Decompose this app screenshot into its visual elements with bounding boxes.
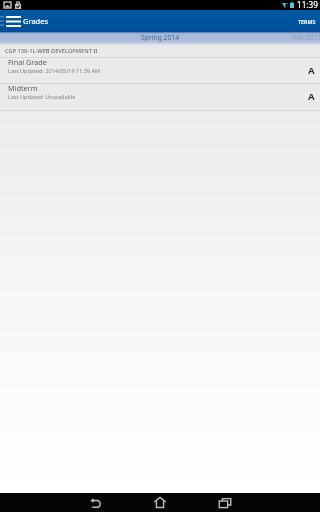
staticText: A [308, 64, 315, 77]
button[interactable]: Spring 2014 [87, 32, 234, 45]
button[interactable]: Home [136, 493, 184, 512]
button[interactable]: Recent apps [201, 493, 249, 512]
staticText: Spring 2014 [141, 33, 180, 42]
staticText: Fall 2013 [293, 33, 320, 42]
button[interactable]: Final Grade [0, 58, 320, 83]
staticText: Last Updated: 2014/05/19 11:39 AM [8, 67, 100, 74]
button[interactable]: Open navigation drawer [2, 10, 24, 32]
staticText: Grades [23, 16, 49, 26]
staticText: TERMS [298, 18, 316, 25]
button[interactable]: Midterm [0, 84, 320, 110]
staticText: Last Updated: Unavailable [8, 93, 76, 100]
staticText: 11:39 [297, 0, 318, 9]
button[interactable]: Fall 2013 [234, 32, 320, 45]
button[interactable]: TERMS [290, 10, 320, 32]
staticText: CGP 130-1L-WEB DEVELOPMENT II [5, 47, 98, 55]
staticText: Final Grade [8, 57, 47, 67]
staticText: Midterm [8, 83, 38, 93]
button[interactable]: Back [71, 493, 119, 512]
staticText: A [308, 90, 315, 103]
